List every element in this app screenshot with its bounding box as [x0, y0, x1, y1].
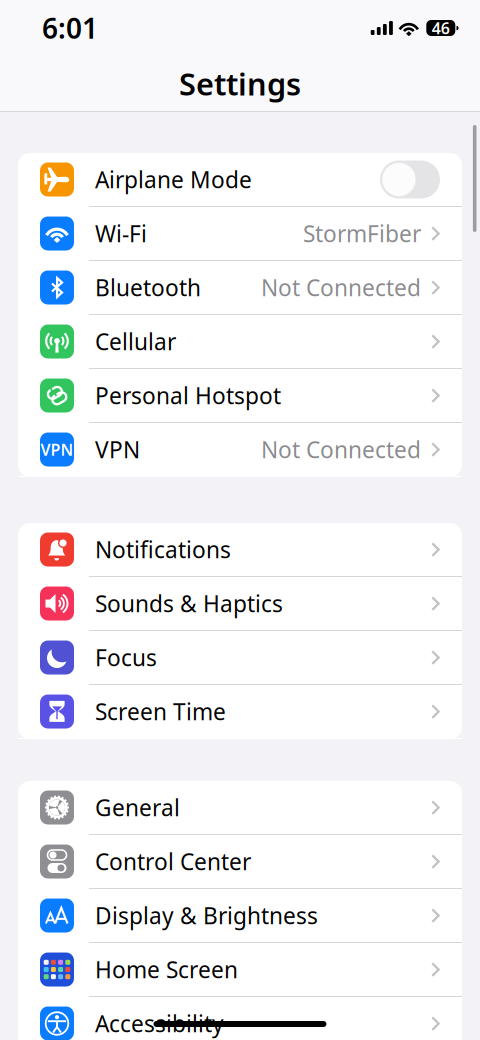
- staticText: Not Connected: [261, 434, 421, 464]
- button[interactable]: Home Screen: [18, 943, 462, 997]
- staticText: VPN: [95, 434, 140, 464]
- button[interactable]: Bluetooth: [18, 261, 462, 315]
- staticText: VPN: [40, 439, 73, 460]
- staticText: Cellular: [95, 326, 176, 356]
- button[interactable]: Accessibility: [18, 997, 462, 1040]
- staticText: StormFiber: [303, 218, 421, 248]
- staticText: Sounds & Haptics: [95, 588, 283, 618]
- staticText: Wi-Fi: [95, 218, 147, 248]
- button[interactable]: General: [18, 781, 462, 835]
- button[interactable]: Sounds & Haptics: [18, 577, 462, 631]
- staticText: Display & Brightness: [95, 900, 318, 930]
- staticText: 6:01: [42, 9, 98, 47]
- staticText: Not Connected: [261, 272, 421, 302]
- button[interactable]: Focus: [18, 631, 462, 685]
- staticText: Control Center: [95, 846, 251, 876]
- button[interactable]: VPN: [18, 423, 462, 477]
- staticText: Airplane Mode: [95, 164, 252, 194]
- staticText: Personal Hotspot: [95, 380, 281, 410]
- staticText: 46: [432, 17, 450, 39]
- button[interactable]: Wi-Fi: [18, 207, 462, 261]
- button[interactable]: Airplane Mode: [18, 153, 462, 207]
- button[interactable]: Personal Hotspot: [18, 369, 462, 423]
- staticText: Home Screen: [95, 954, 238, 984]
- staticText: Focus: [95, 642, 157, 672]
- staticText: Accessibility: [95, 1008, 224, 1038]
- staticText: Screen Time: [95, 696, 226, 726]
- button[interactable]: Screen Time: [18, 685, 462, 739]
- staticText: General: [95, 792, 180, 822]
- button[interactable]: Control Center: [18, 835, 462, 889]
- button[interactable]: Notifications: [18, 523, 462, 577]
- staticText: Notifications: [95, 534, 231, 564]
- staticText: Bluetooth: [95, 272, 201, 302]
- button[interactable]: Display & Brightness: [18, 889, 462, 943]
- button[interactable]: Cellular: [18, 315, 462, 369]
- staticText: Settings: [179, 63, 301, 104]
